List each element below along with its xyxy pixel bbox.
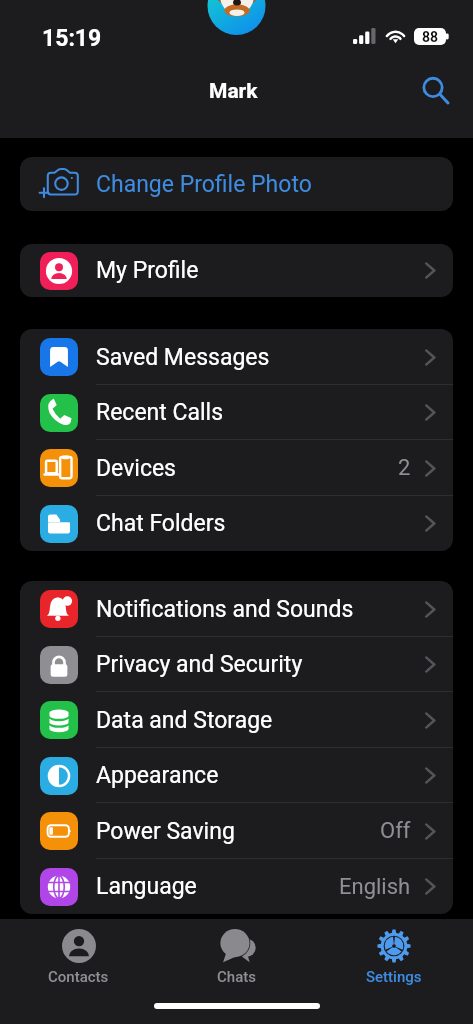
button[interactable]: Power Saving: [20, 803, 453, 859]
staticText: Recent Calls: [96, 399, 224, 426]
staticText: 2: [398, 455, 411, 481]
staticText: Data and Storage: [96, 707, 273, 734]
staticText: Settings: [366, 968, 422, 986]
staticText: Off: [380, 818, 411, 844]
button[interactable]: Saved Messages: [20, 329, 453, 385]
button[interactable]: Change Profile Photo: [20, 157, 453, 211]
button[interactable]: Contacts: [0, 919, 157, 991]
button[interactable]: Language: [20, 859, 453, 914]
button[interactable]: Privacy and Security: [20, 637, 453, 692]
staticText: Devices: [96, 455, 176, 482]
button[interactable]: Data and Storage: [20, 692, 453, 748]
button[interactable]: Devices: [20, 440, 453, 496]
staticText: 88: [422, 29, 439, 45]
staticText: Chat Folders: [96, 510, 226, 537]
staticText: Contacts: [48, 968, 109, 986]
button[interactable]: Search: [413, 68, 459, 114]
staticText: 15:19: [42, 25, 102, 52]
staticText: Change Profile Photo: [96, 171, 312, 198]
staticText: Appearance: [96, 762, 219, 789]
button[interactable]: Notifications and Sounds: [20, 581, 453, 637]
staticText: Privacy and Security: [96, 651, 303, 678]
staticText: My Profile: [96, 257, 199, 284]
button[interactable]: My Profile: [20, 244, 453, 297]
staticText: English: [339, 874, 411, 900]
staticText: Saved Messages: [96, 344, 270, 371]
button[interactable]: Settings: [315, 919, 473, 991]
staticText: Power Saving: [96, 818, 235, 845]
button[interactable]: Chat Folders: [20, 496, 453, 551]
button[interactable]: Chats: [157, 919, 315, 991]
staticText: Language: [96, 873, 197, 900]
staticText: Chats: [217, 968, 256, 986]
button[interactable]: Recent Calls: [20, 385, 453, 440]
button[interactable]: Appearance: [20, 748, 453, 803]
staticText: Notifications and Sounds: [96, 596, 354, 623]
staticText: Mark: [209, 79, 258, 104]
